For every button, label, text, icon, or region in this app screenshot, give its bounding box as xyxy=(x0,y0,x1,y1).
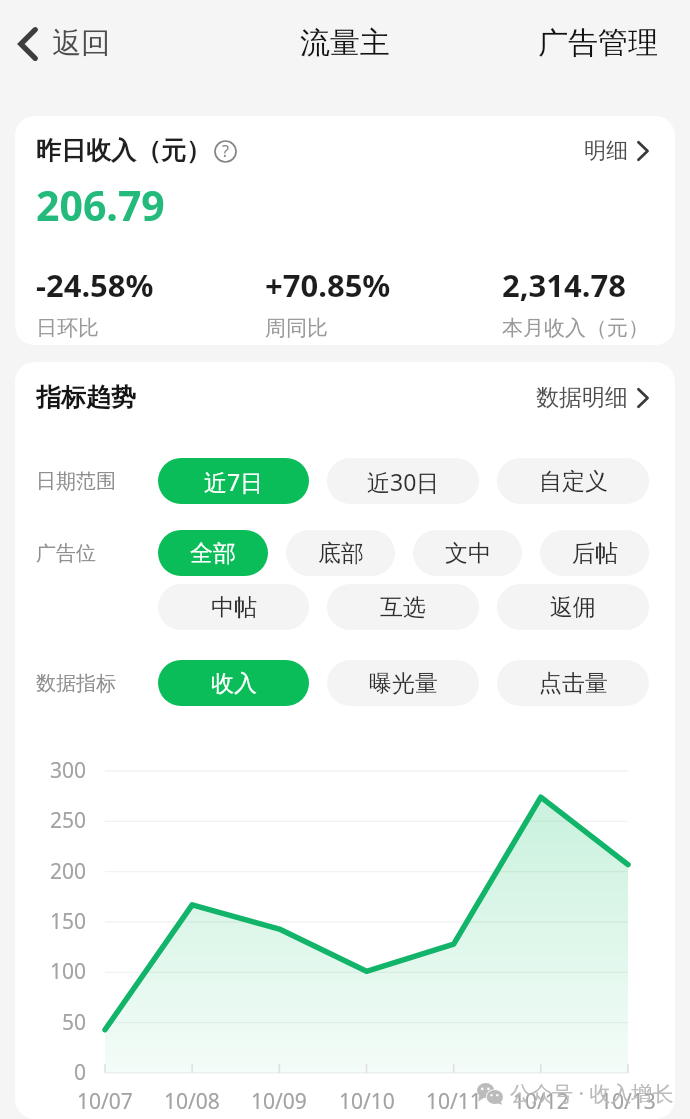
staticText: 全部 xyxy=(190,539,236,568)
button[interactable]: 说明 xyxy=(213,139,237,163)
staticText: 10/12 xyxy=(513,1087,569,1116)
button[interactable]: 返佣 xyxy=(497,584,649,630)
button[interactable]: 互选 xyxy=(327,584,479,630)
staticText: 指标趋势 xyxy=(36,382,136,413)
staticText: 10/09 xyxy=(251,1087,307,1116)
staticText: 300 xyxy=(49,756,86,785)
staticText: 广告管理 xyxy=(538,24,658,62)
button[interactable]: 后帖 xyxy=(540,530,649,576)
staticText: 返佣 xyxy=(550,593,596,622)
staticText: 200 xyxy=(49,857,86,886)
staticText: 返回 xyxy=(52,25,110,62)
staticText: 日期范围 xyxy=(36,469,116,494)
staticText: 后帖 xyxy=(572,539,618,568)
button[interactable]: 数据明细 xyxy=(536,383,649,412)
staticText: 广告位 xyxy=(36,541,96,566)
staticText: -24.58% xyxy=(36,264,154,306)
staticText: 底部 xyxy=(318,539,364,568)
staticText: ? xyxy=(222,140,229,162)
staticText: 数据指标 xyxy=(36,671,116,696)
button[interactable]: 中帖 xyxy=(158,584,309,630)
staticText: 近7日 xyxy=(204,466,264,497)
button[interactable]: 广告管理 xyxy=(538,24,658,62)
staticText: 明细 xyxy=(584,137,628,165)
staticText: 本月收入（元） xyxy=(502,315,649,341)
staticText: 近30日 xyxy=(367,466,440,497)
staticText: 10/07 xyxy=(77,1087,133,1116)
button[interactable]: 近7日 xyxy=(158,458,309,504)
staticText: +70.85% xyxy=(265,264,391,306)
staticText: 2,314.78 xyxy=(502,264,626,306)
staticText: 昨日收入（元） xyxy=(36,135,211,166)
staticText: 曝光量 xyxy=(369,669,438,698)
staticText: 自定义 xyxy=(539,467,608,496)
button[interactable]: 点击量 xyxy=(497,660,649,706)
staticText: 250 xyxy=(49,806,86,835)
staticText: 日环比 xyxy=(36,315,99,341)
staticText: 公众号 · 收入增长 xyxy=(510,1079,674,1108)
button[interactable]: 文中 xyxy=(413,530,522,576)
staticText: 10/13 xyxy=(600,1087,656,1116)
button[interactable]: 明细 xyxy=(584,137,649,165)
button[interactable]: 收入 xyxy=(158,660,309,706)
staticText: 10/10 xyxy=(339,1087,395,1116)
staticText: 周同比 xyxy=(265,315,328,341)
staticText: 0 xyxy=(73,1058,86,1087)
staticText: 50 xyxy=(61,1008,86,1037)
staticText: 中帖 xyxy=(211,593,257,622)
staticText: 文中 xyxy=(445,539,491,568)
staticText: 150 xyxy=(49,907,86,936)
button[interactable]: 自定义 xyxy=(497,458,649,504)
button[interactable]: 底部 xyxy=(286,530,395,576)
staticText: 互选 xyxy=(380,593,426,622)
staticText: 点击量 xyxy=(539,669,608,698)
staticText: 206.79 xyxy=(36,177,165,233)
button[interactable]: 曝光量 xyxy=(327,660,479,706)
staticText: 10/08 xyxy=(164,1087,220,1116)
staticText: 10/11 xyxy=(426,1087,482,1116)
button[interactable]: 近30日 xyxy=(327,458,479,504)
staticText: 收入 xyxy=(211,669,257,698)
staticText: 100 xyxy=(49,957,86,986)
button[interactable]: 全部 xyxy=(158,530,268,576)
staticText: 数据明细 xyxy=(536,383,628,412)
button[interactable]: 返回 xyxy=(12,19,114,68)
staticText: 流量主 xyxy=(300,24,390,62)
